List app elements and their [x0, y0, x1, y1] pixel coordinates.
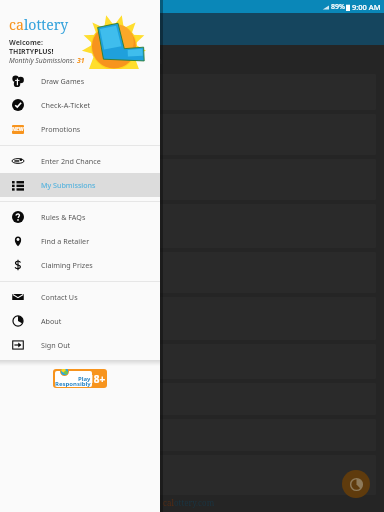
button[interactable] [8, 204, 376, 248]
staticText: cal [163, 497, 174, 508]
button[interactable] [8, 114, 376, 155]
button[interactable]: Contact Us [0, 285, 160, 309]
button[interactable]: August 2019 Submissions: 31 of 50 Month [8, 74, 376, 110]
button[interactable]: Find a Retailer [0, 229, 160, 253]
staticText: 89% [331, 2, 345, 12]
button[interactable]: Sign Out [0, 333, 160, 357]
staticText: Monthly Submissions: [9, 56, 77, 65]
button[interactable] [8, 455, 376, 495]
staticText: THIRTYPLUS! [9, 47, 54, 57]
staticText: NEW [12, 126, 24, 133]
staticText: My Submissions [41, 180, 96, 190]
staticText: Enter 2nd Chance [41, 156, 101, 166]
button[interactable] [8, 252, 376, 293]
staticText: ca [9, 15, 24, 34]
button[interactable] [8, 419, 376, 451]
button[interactable] [8, 383, 376, 415]
button[interactable] [8, 297, 376, 340]
button[interactable]: Open navigation drawer [10, 20, 28, 38]
staticText: Rules & FAQs [41, 212, 86, 222]
staticText: Welcome: [9, 38, 43, 48]
staticText: Play [78, 375, 91, 383]
staticText: Find a Retailer [41, 236, 90, 246]
staticText: lottery [24, 15, 69, 34]
button[interactable]: History [342, 470, 370, 498]
staticText: Contact Us [41, 292, 78, 302]
staticText: Claiming Prizes [41, 260, 93, 270]
button[interactable]: Check-A-Ticket [0, 93, 160, 117]
staticText: 9:00 AM [352, 2, 381, 12]
staticText: Sign Out [41, 340, 71, 350]
staticText: Draw Games [41, 76, 85, 86]
staticText: Responsibly [55, 380, 91, 387]
button[interactable]: Claiming Prizes [0, 253, 160, 277]
button[interactable]: Rules & FAQs [0, 205, 160, 229]
button[interactable]: Draw Games [0, 69, 160, 93]
staticText: You have 31 submissions this month [8, 54, 162, 66]
staticText: Promotions [41, 124, 81, 134]
button[interactable]: NEW [0, 117, 160, 141]
button[interactable]: Play Responsibly 18+ [53, 369, 107, 388]
staticText: My Submissions [38, 21, 130, 37]
staticText: ottery.com [174, 497, 215, 508]
staticText: August 2019 Submissions: 31 of 50 Month [8, 77, 160, 88]
button[interactable]: About [0, 309, 160, 333]
staticText: About [41, 316, 62, 326]
button[interactable]: Enter 2nd Chance [0, 149, 160, 173]
button[interactable] [8, 344, 376, 379]
staticText: Check-A-Ticket [41, 100, 91, 110]
button[interactable] [8, 159, 376, 200]
staticText: 18+ [88, 372, 106, 386]
staticText: 31 [77, 56, 85, 65]
button[interactable]: My Submissions [0, 173, 160, 197]
